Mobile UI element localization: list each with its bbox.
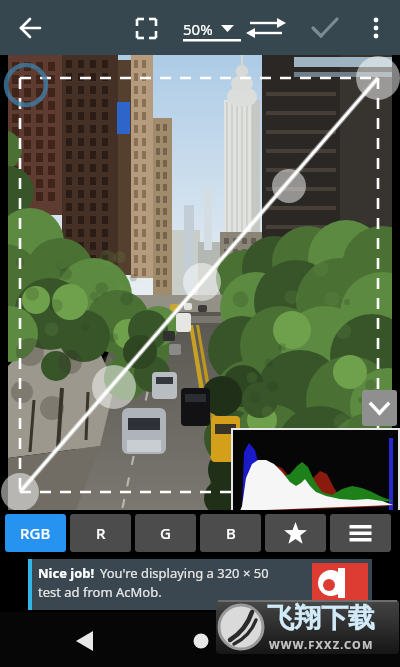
- staticText: RGB: [20, 523, 51, 543]
- button[interactable]: [354, 4, 398, 52]
- staticText: G: [160, 523, 171, 543]
- staticText: R: [96, 523, 106, 543]
- staticText: Nice job!: [38, 564, 95, 582]
- button[interactable]: RGB: [5, 514, 66, 552]
- staticText: 飞翔下载: [267, 601, 375, 635]
- button[interactable]: [362, 390, 397, 426]
- button[interactable]: [330, 514, 391, 552]
- staticText: You're displaying a 320 × 50: [100, 564, 269, 582]
- button[interactable]: [265, 514, 326, 552]
- button[interactable]: [175, 618, 227, 662]
- staticText: B: [226, 523, 236, 543]
- button[interactable]: [8, 4, 54, 52]
- staticText: 50%: [183, 19, 213, 39]
- button[interactable]: [60, 618, 112, 662]
- button[interactable]: G: [135, 514, 196, 552]
- staticText: test ad from AcMob.: [38, 583, 162, 601]
- button[interactable]: R: [70, 514, 131, 552]
- button[interactable]: [302, 4, 348, 52]
- staticText: WWW.FXXZ.COM: [269, 637, 374, 652]
- button[interactable]: [244, 4, 290, 52]
- button[interactable]: [124, 4, 168, 52]
- button[interactable]: B: [200, 514, 261, 552]
- button[interactable]: Nice job!: [28, 559, 372, 610]
- button[interactable]: [178, 4, 242, 52]
